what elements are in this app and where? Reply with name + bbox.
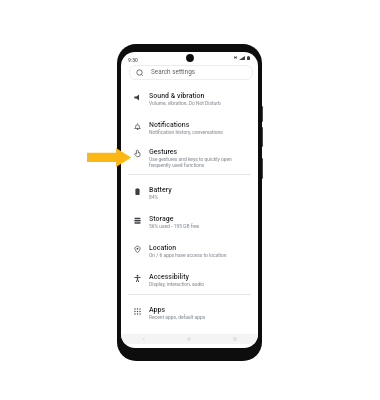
staticText: Battery	[149, 186, 172, 194]
staticText: Recent apps, default apps	[149, 314, 206, 320]
button[interactable]: Apps	[121, 297, 258, 327]
staticText: Display, interaction, audio	[149, 281, 205, 287]
staticText: 84%	[149, 194, 159, 200]
button[interactable]: Accessibility	[121, 264, 258, 294]
button[interactable]: Storage	[121, 206, 258, 236]
staticText: Notifications	[149, 121, 190, 129]
staticText: Use gestures and keys to quickly open fr…	[149, 156, 232, 168]
staticText: Notification history, conversations	[149, 129, 223, 135]
button[interactable]: Sound & vibration	[121, 83, 258, 113]
button[interactable]: Location	[121, 235, 258, 265]
staticText: Location	[149, 244, 177, 252]
staticText: Sound & vibration	[149, 92, 205, 100]
button[interactable]: Battery	[121, 177, 258, 207]
staticText: Search settings	[151, 68, 196, 76]
button[interactable]: Back	[121, 334, 166, 344]
staticText: 56% used - 195 GB free	[149, 223, 200, 229]
button[interactable]: Search settings	[129, 65, 253, 80]
staticText: On / 6 apps have access to location	[149, 252, 227, 258]
staticText: Apps	[149, 306, 166, 314]
staticText: Gestures	[149, 148, 178, 156]
staticText: Accessibility	[149, 273, 189, 281]
staticText: 9:30	[128, 57, 138, 63]
staticText: Volume, vibration, Do Not Disturb	[149, 100, 221, 106]
button[interactable]: Gestures	[121, 139, 258, 175]
button[interactable]: Notifications	[121, 112, 258, 142]
staticText: Storage	[149, 215, 174, 223]
button[interactable]: Recent apps	[212, 334, 258, 344]
